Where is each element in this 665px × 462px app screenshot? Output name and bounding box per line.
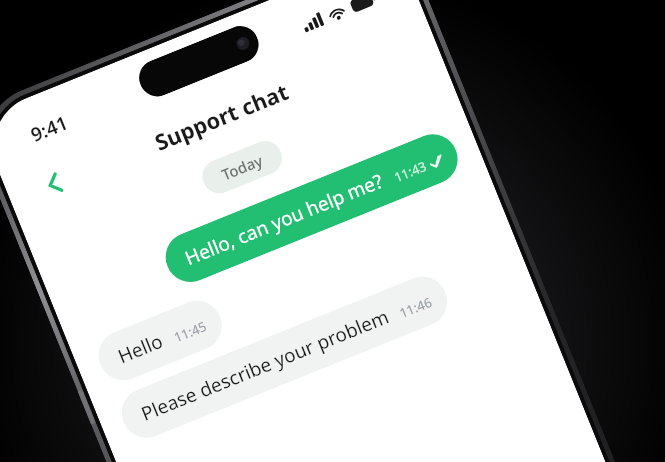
button[interactable]: Today (197, 136, 287, 198)
staticText: 11:45 (171, 317, 210, 346)
button[interactable]: Hello (91, 293, 229, 388)
staticText: Support chat (150, 76, 293, 157)
staticText: Hello, can you help me? (181, 167, 387, 271)
button[interactable]: Hello, can you help me? (158, 127, 465, 290)
staticText: Today (218, 150, 266, 185)
staticText: 9:41 (27, 109, 72, 148)
staticText: Please describe your problem (137, 303, 393, 427)
button[interactable]: Please describe your problem (114, 269, 455, 445)
staticText: 11:43 (391, 157, 430, 186)
staticText: 11:46 (397, 293, 435, 322)
button[interactable]: Back (26, 155, 84, 212)
staticText: Hello (114, 328, 167, 369)
